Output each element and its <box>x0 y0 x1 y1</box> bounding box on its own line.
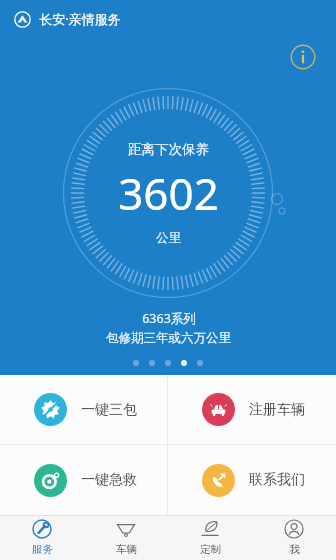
staticText: 一键三包 <box>81 401 137 419</box>
staticText: 3602 <box>118 163 219 223</box>
button[interactable]: 联系我们 <box>168 445 336 515</box>
button[interactable]: Information <box>290 44 316 70</box>
button[interactable]: 定制 <box>168 515 252 560</box>
staticText: 车辆 <box>116 543 137 556</box>
staticText: 包修期三年或六万公里 <box>106 330 231 346</box>
staticText: 我 <box>289 543 300 556</box>
staticText: 公里 <box>156 230 181 246</box>
button[interactable]: 一键三包 <box>0 375 167 444</box>
button[interactable]: 我 <box>252 515 336 560</box>
button[interactable]: 服务 <box>0 515 84 560</box>
staticText: 联系我们 <box>249 471 305 489</box>
button[interactable]: 注册车辆 <box>168 375 336 444</box>
staticText: 定制 <box>200 543 221 556</box>
staticText: 6363系列 <box>142 310 196 327</box>
staticText: 长安·亲情服务 <box>39 10 121 28</box>
button[interactable]: 一键急救 <box>0 445 167 515</box>
staticText: 一键急救 <box>81 471 137 489</box>
staticText: 服务 <box>32 543 53 556</box>
staticText: 距离下次保养 <box>128 141 209 158</box>
staticText: 注册车辆 <box>249 401 305 419</box>
button[interactable]: 车辆 <box>84 515 168 560</box>
